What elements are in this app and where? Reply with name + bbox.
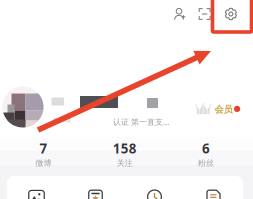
- staticText: 158: [113, 139, 137, 157]
- staticText: 认证 第一直支…: [113, 116, 169, 127]
- staticText: 微博: [35, 158, 51, 168]
- staticText: 关注: [117, 158, 133, 168]
- button[interactable]: Settings: [219, 2, 243, 26]
- staticText: 会员: [214, 104, 232, 115]
- button[interactable]: [184, 190, 243, 199]
- button[interactable]: Scan: [193, 2, 217, 26]
- staticText: 6: [202, 139, 210, 157]
- button[interactable]: [7, 190, 66, 199]
- button[interactable]: Add friend: [168, 2, 192, 26]
- staticText: 7: [39, 139, 47, 157]
- button[interactable]: [66, 190, 125, 199]
- staticText: 粉丝: [198, 158, 214, 168]
- button[interactable]: [125, 190, 184, 199]
